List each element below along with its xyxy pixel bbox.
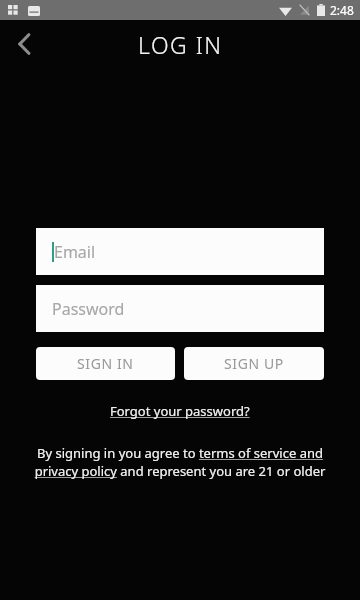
button[interactable]: SIGN UP xyxy=(184,347,324,380)
staticText: LOG IN xyxy=(138,29,223,60)
staticText: SIGN IN xyxy=(77,354,134,373)
button[interactable]: By signing in you agree to terms of serv… xyxy=(14,444,346,480)
staticText: By signing in you agree to terms of serv… xyxy=(14,444,346,480)
staticText: Email xyxy=(54,241,96,263)
button[interactable]: SIGN IN xyxy=(36,347,175,380)
button[interactable]: Back xyxy=(0,20,48,68)
button[interactable]: Email xyxy=(36,228,324,275)
staticText: 2:48 xyxy=(330,2,354,18)
staticText: Forgot your password? xyxy=(110,402,250,420)
button[interactable]: Password xyxy=(36,285,324,332)
staticText: Password xyxy=(52,298,125,320)
button[interactable]: Forgot your password? xyxy=(110,402,250,420)
staticText: SIGN UP xyxy=(224,354,284,373)
